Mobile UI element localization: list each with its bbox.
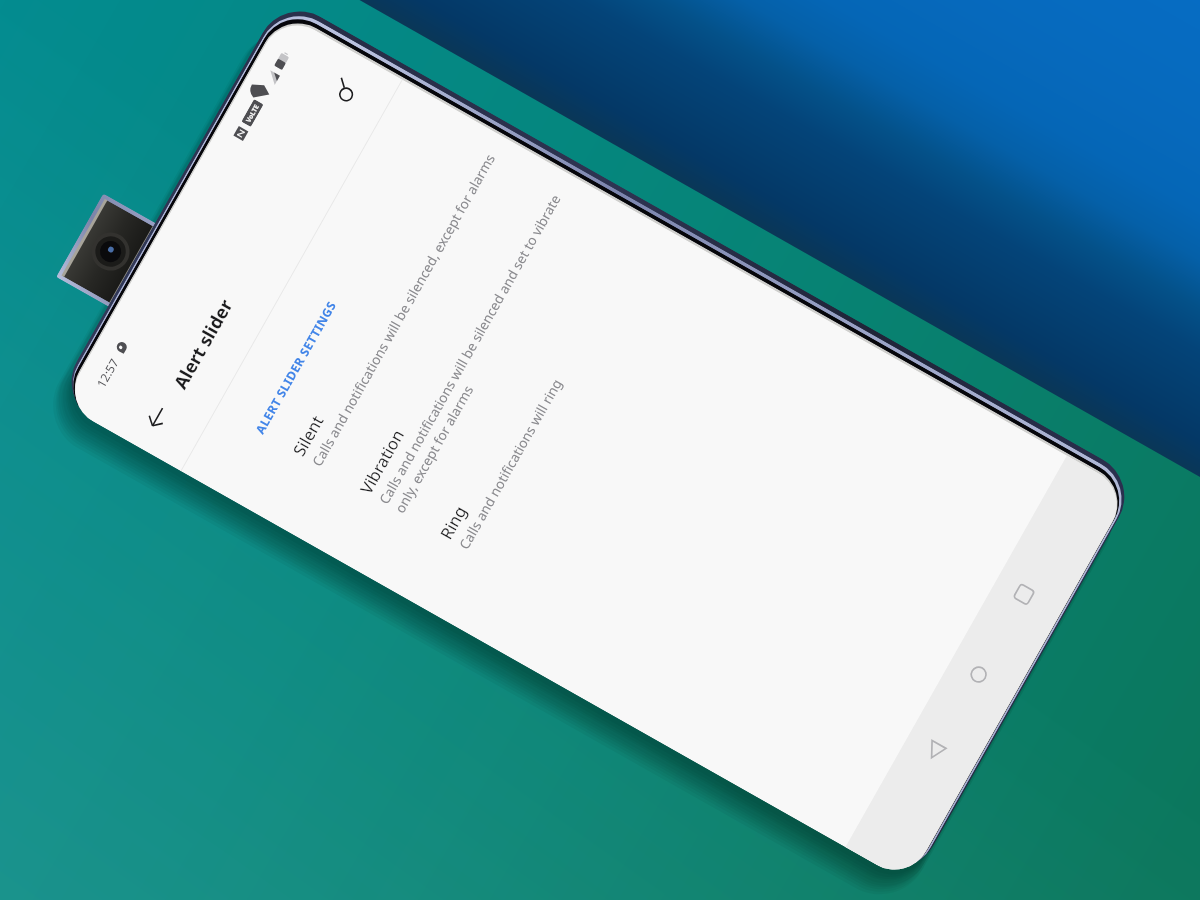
staticText: only, except for alarms bbox=[391, 382, 477, 516]
staticText: VoLTE bbox=[244, 102, 261, 124]
button[interactable]: Recent apps bbox=[991, 562, 1057, 627]
staticText: Vibration bbox=[354, 425, 408, 497]
staticText: ALERT SLIDER SETTINGS bbox=[251, 298, 339, 436]
button[interactable]: Back bbox=[903, 718, 968, 784]
staticText: 12:57 bbox=[93, 355, 122, 390]
staticText: Silent bbox=[287, 410, 328, 459]
staticText: Ring bbox=[434, 501, 471, 543]
staticText: Calls and notifications will be silenced… bbox=[308, 151, 499, 469]
button[interactable]: Ring bbox=[422, 199, 664, 565]
button[interactable]: Silent bbox=[275, 116, 517, 482]
staticText: Calls and notifications will ring bbox=[455, 376, 566, 552]
button[interactable]: Navigate up bbox=[127, 387, 187, 447]
staticText: Alert slider bbox=[168, 294, 239, 393]
staticText: Calls and notifications will be silenced… bbox=[375, 191, 565, 507]
button[interactable]: Home bbox=[946, 642, 1011, 707]
button[interactable]: Search bbox=[314, 60, 374, 120]
button[interactable]: Vibration bbox=[342, 154, 599, 529]
